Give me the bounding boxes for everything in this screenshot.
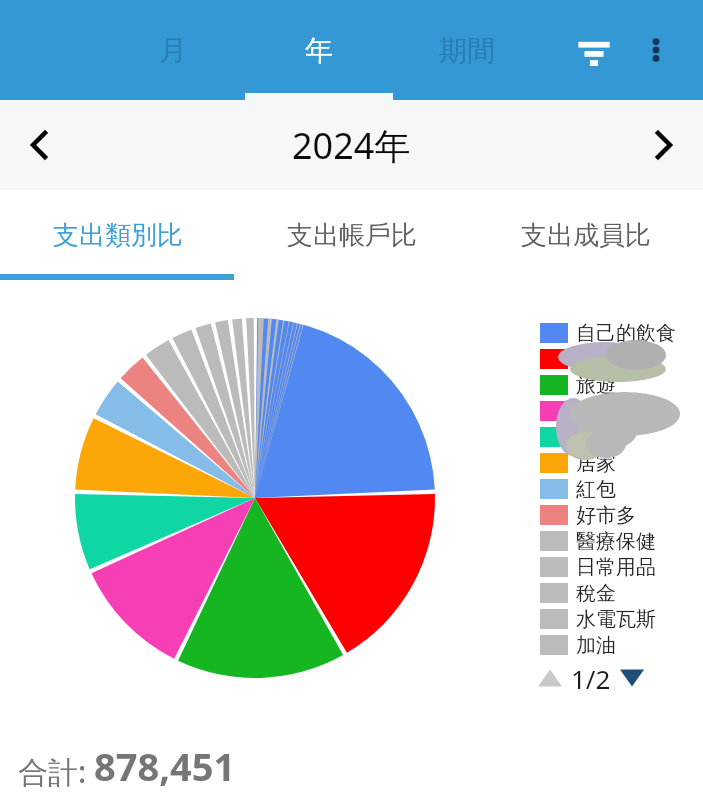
staticText: 878,451 xyxy=(94,740,236,792)
button[interactable]: 稅金 xyxy=(540,580,703,606)
staticText: 支出成員比 xyxy=(521,219,651,252)
staticText: 好市多 xyxy=(576,503,636,528)
button[interactable]: 旅遊 xyxy=(540,372,703,398)
button[interactable]: 醫療保健 xyxy=(540,528,703,554)
button[interactable]: Previous page xyxy=(533,661,567,695)
button[interactable]: Previous page xyxy=(533,658,649,698)
button[interactable]: 支出類別比 xyxy=(0,190,235,280)
button[interactable]: 居家 xyxy=(540,450,703,476)
staticText: 合計: xyxy=(18,751,94,792)
staticText: 日常用品 xyxy=(576,555,656,580)
button[interactable]: 年 xyxy=(245,0,393,100)
button[interactable]: 花費 xyxy=(540,346,703,372)
staticText: 醫療保健 xyxy=(576,529,656,554)
button[interactable]: 支出成員比 xyxy=(469,190,703,280)
button[interactable]: Next year xyxy=(625,100,703,190)
button[interactable]: 好市多 xyxy=(540,502,703,528)
button[interactable]: 期間 xyxy=(393,0,541,100)
button[interactable]: 自己的飲食 xyxy=(540,320,703,346)
staticText: 花費 xyxy=(576,347,616,372)
staticText: 支出帳戶比 xyxy=(287,219,417,252)
staticText: 支出類別比 xyxy=(53,219,183,252)
button[interactable]: More options xyxy=(625,19,687,81)
staticText: 的 xyxy=(576,399,596,424)
staticText: 期間 xyxy=(439,33,495,68)
button[interactable]: 月 xyxy=(100,0,245,100)
staticText: 居家 xyxy=(576,451,616,476)
staticText: 花費 xyxy=(576,425,616,450)
button[interactable]: 紅包 xyxy=(540,476,703,502)
button[interactable]: 花費 xyxy=(540,424,703,450)
button[interactable]: Filter xyxy=(563,19,625,81)
staticText: 旅遊 xyxy=(576,373,616,398)
staticText: 水電瓦斯 xyxy=(576,607,656,632)
staticText: 月 xyxy=(159,33,187,68)
staticText: 2024年 xyxy=(292,121,411,170)
button[interactable]: 水電瓦斯 xyxy=(540,606,703,632)
staticText: 稅金 xyxy=(576,581,616,606)
staticText: 年 xyxy=(305,33,333,68)
button[interactable]: 日常用品 xyxy=(540,554,703,580)
staticText: 加油 xyxy=(576,633,616,658)
button[interactable]: 的 xyxy=(540,398,703,424)
staticText: 自己的飲食 xyxy=(576,321,676,346)
staticText: 紅包 xyxy=(576,477,616,502)
button[interactable]: Next page xyxy=(615,661,649,695)
button[interactable]: 加油 xyxy=(540,632,703,658)
button[interactable]: 支出帳戶比 xyxy=(235,190,469,280)
staticText: 1/2 xyxy=(571,661,611,696)
button[interactable]: Previous year xyxy=(0,100,78,190)
